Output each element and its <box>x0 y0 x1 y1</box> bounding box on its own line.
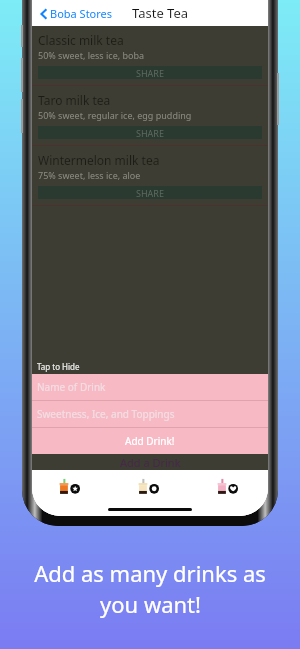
button[interactable]: Boba Stores <box>38 4 115 23</box>
button[interactable]: Name of Drink <box>32 374 268 400</box>
staticText: Taste Tea <box>132 4 189 22</box>
staticText: SHARE <box>136 67 164 79</box>
staticText: you want! <box>100 589 201 619</box>
staticText: 50% sweet, regular ice, egg pudding <box>38 109 192 121</box>
button[interactable]: Tap to Hide <box>32 359 268 374</box>
staticText: Taro milk tea <box>38 92 111 108</box>
button[interactable]: Liked <box>189 470 268 504</box>
staticText: Sweetness, Ice, and Toppings <box>37 407 175 421</box>
staticText: Add a Drink <box>120 455 181 470</box>
button[interactable]: SHARE <box>38 186 262 199</box>
staticText: SHARE <box>136 187 164 199</box>
staticText: 50% sweet, less ice, boba <box>38 49 145 61</box>
button[interactable]: Taro milk tea <box>32 86 268 145</box>
button[interactable]: Classic milk tea <box>32 26 268 85</box>
staticText: Wintermelon milk tea <box>38 152 160 168</box>
staticText: Classic milk tea <box>38 32 124 48</box>
staticText: Name of Drink <box>37 380 106 394</box>
staticText: Add as many drinks as <box>34 558 266 588</box>
button[interactable]: Add Drink! <box>32 428 268 454</box>
staticText: 75% sweet, less ice, aloe <box>38 169 141 181</box>
button[interactable]: Recents <box>110 470 189 504</box>
staticText: Tap to Hide <box>37 361 80 372</box>
button[interactable]: SHARE <box>38 126 262 139</box>
staticText: Add Drink! <box>125 434 175 448</box>
button[interactable]: SHARE <box>38 66 262 79</box>
button[interactable]: Add a Drink <box>32 454 268 470</box>
staticText: SHARE <box>136 127 164 139</box>
button[interactable]: Favorites <box>32 470 110 504</box>
button[interactable]: Wintermelon milk tea <box>32 146 268 205</box>
staticText: Boba Stores <box>50 6 113 21</box>
button[interactable]: Sweetness, Ice, and Toppings <box>32 401 268 427</box>
